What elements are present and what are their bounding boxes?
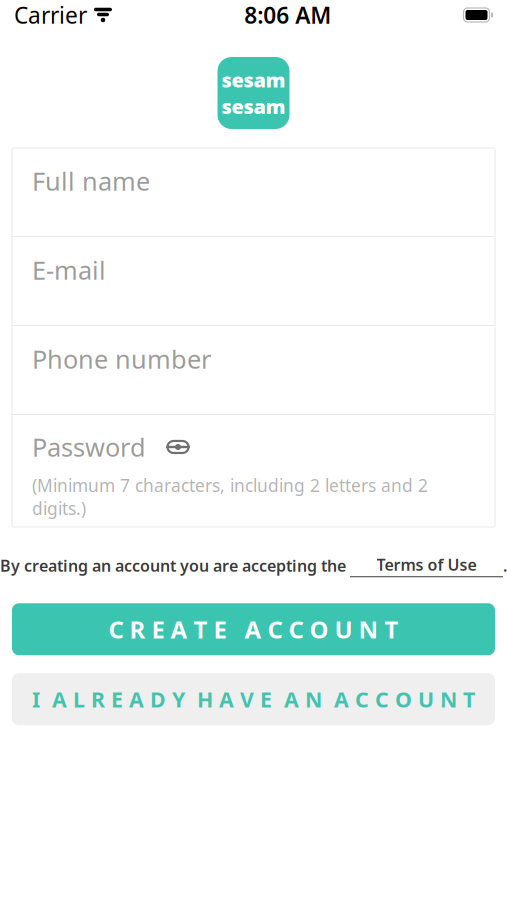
staticText: 8:06 AM <box>244 0 331 30</box>
staticText: Password <box>32 430 146 464</box>
button[interactable]: C R E A T E A C C O U N T <box>12 603 495 655</box>
staticText: C R E A T E A C C O U N T <box>108 613 398 645</box>
button[interactable]: Password <box>12 415 495 527</box>
staticText: . <box>503 555 507 576</box>
button[interactable]: E-mail <box>12 237 495 325</box>
staticText: Full name <box>32 164 150 198</box>
staticText: E-mail <box>32 253 106 287</box>
staticText: Terms of Use <box>376 554 476 575</box>
staticText: Phone number <box>32 342 211 376</box>
staticText: I A L R E A D Y H A V E A N A C C O U N … <box>32 685 475 713</box>
staticText: sesam <box>221 93 285 120</box>
button[interactable]: Phone number <box>12 326 495 414</box>
staticText: Carrier <box>14 0 87 30</box>
button[interactable]: Full name <box>12 148 495 236</box>
button[interactable]: I A L R E A D Y H A V E A N A C C O U N … <box>12 673 495 725</box>
staticText: (Minimum 7 characters, including 2 lette… <box>32 474 428 520</box>
button[interactable]: Terms of Use <box>350 554 503 577</box>
staticText: sesam <box>221 66 285 93</box>
staticText: By creating an account you are accepting… <box>0 555 350 576</box>
